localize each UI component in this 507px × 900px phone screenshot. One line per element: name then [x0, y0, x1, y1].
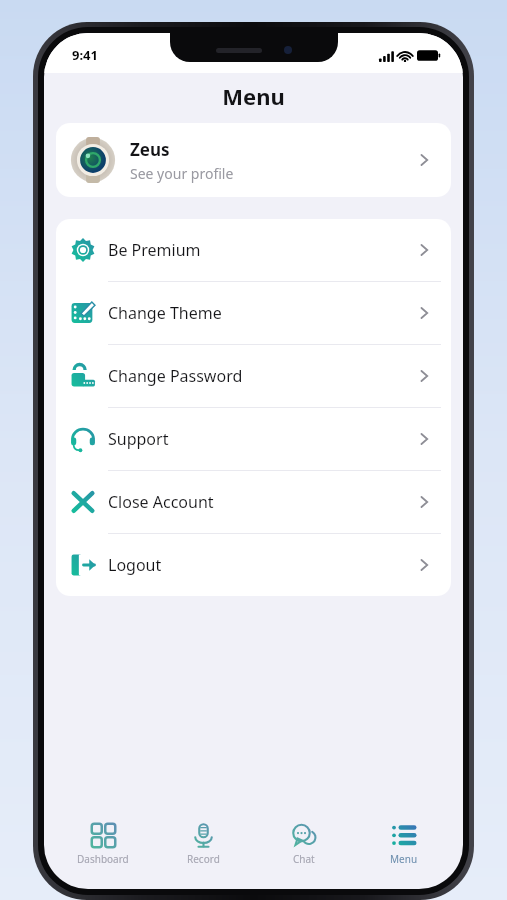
staticText: Menu [44, 81, 463, 111]
staticText: Menu [390, 852, 418, 866]
button[interactable]: Logout [56, 534, 451, 596]
button[interactable]: Change Password [56, 345, 451, 407]
staticText: Chat [293, 852, 315, 866]
button[interactable]: Dashboard [61, 819, 145, 870]
staticText: Be Premium [108, 239, 415, 261]
button[interactable]: Menu [362, 819, 446, 870]
button[interactable]: Change Theme [56, 282, 451, 344]
staticText: Logout [108, 554, 415, 576]
staticText: Change Theme [108, 302, 415, 324]
staticText: Close Account [108, 491, 415, 513]
staticText: Support [108, 428, 415, 450]
staticText: See your profile [130, 164, 234, 183]
button[interactable]: Chat [262, 819, 346, 870]
staticText: Record [187, 852, 220, 866]
button[interactable]: Support [56, 408, 451, 470]
button[interactable]: Close Account [56, 471, 451, 533]
staticText: Change Password [108, 365, 415, 387]
button[interactable]: Be Premium [56, 219, 451, 281]
staticText: Dashboard [77, 852, 129, 866]
button[interactable]: Record [161, 819, 245, 870]
button[interactable]: Zeus [56, 123, 451, 197]
staticText: 9:41 [72, 46, 98, 64]
staticText: Zeus [130, 138, 170, 161]
